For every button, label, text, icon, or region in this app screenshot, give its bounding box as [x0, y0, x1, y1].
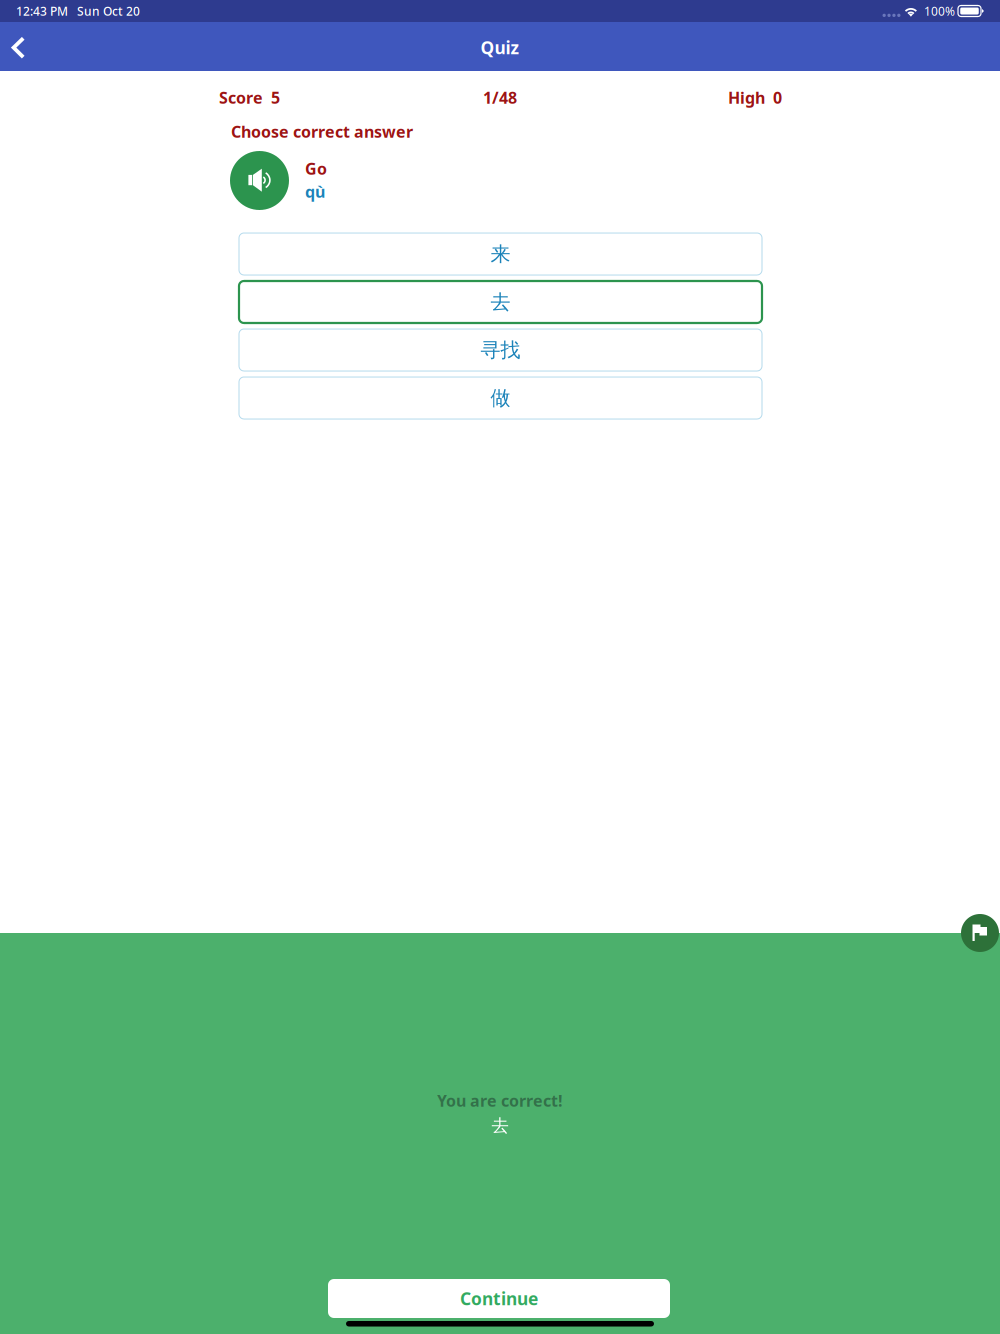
staticText: 100%: [924, 3, 955, 19]
staticText: 来: [490, 242, 510, 266]
staticText: Score 5: [219, 87, 280, 108]
staticText: High 0: [728, 87, 782, 108]
staticText: Choose correct answer: [231, 121, 413, 142]
staticText: Sun Oct 20: [77, 3, 140, 19]
staticText: Continue: [460, 1287, 538, 1310]
button[interactable]: 做: [239, 377, 762, 419]
button[interactable]: 寻找: [239, 329, 762, 371]
staticText: 做: [490, 386, 510, 410]
staticText: 去: [490, 290, 510, 314]
button[interactable]: Play pronunciation: [230, 151, 289, 210]
staticText: Quiz: [480, 36, 519, 59]
button[interactable]: Back: [0, 26, 41, 70]
staticText: 去: [491, 1115, 508, 1136]
button[interactable]: 去: [239, 281, 762, 323]
staticText: 1/48: [483, 87, 517, 108]
staticText: 12:43 PM: [16, 3, 68, 19]
button[interactable]: 来: [239, 233, 762, 275]
staticText: 寻找: [480, 338, 520, 362]
button[interactable]: Report a problem: [961, 914, 999, 952]
button[interactable]: Continue: [328, 1279, 670, 1318]
staticText: You are correct!: [437, 1090, 563, 1111]
staticText: Go: [305, 158, 327, 179]
staticText: qù: [305, 181, 325, 202]
